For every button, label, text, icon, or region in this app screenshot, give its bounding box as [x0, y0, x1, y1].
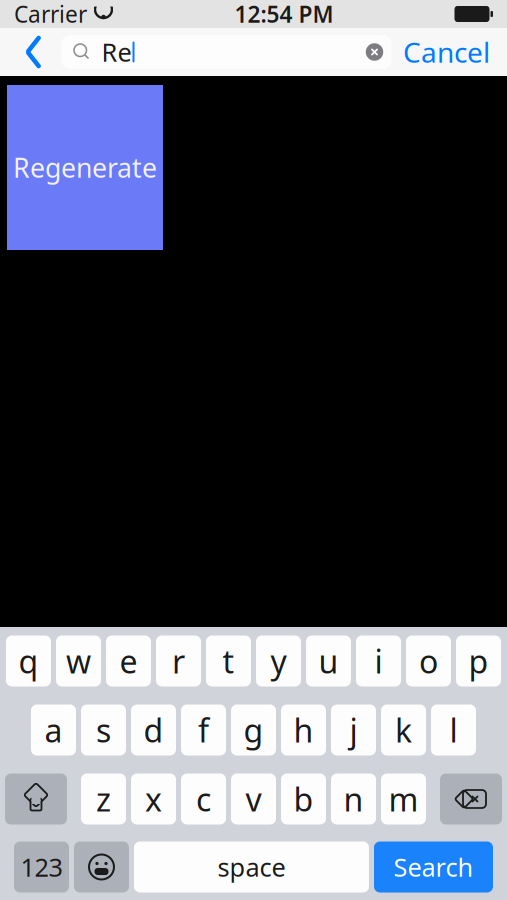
staticText: b [293, 778, 313, 820]
staticText: h [293, 709, 313, 751]
button[interactable]: Emoji [74, 841, 129, 892]
button[interactable]: l [431, 704, 476, 755]
staticText: r [172, 640, 185, 682]
button[interactable]: k [381, 704, 426, 755]
button[interactable]: f [181, 704, 226, 755]
staticText: u [318, 640, 338, 682]
staticText: Regenerate [13, 150, 157, 185]
staticText: n [343, 778, 363, 820]
button[interactable]: Search [374, 841, 493, 892]
staticText: m [388, 778, 418, 820]
staticText: l [449, 709, 457, 751]
button[interactable]: d [131, 704, 176, 755]
button[interactable]: Shift [5, 773, 67, 824]
button[interactable]: u [306, 635, 351, 686]
staticText: x [145, 778, 162, 820]
staticText: s [96, 709, 111, 751]
staticText: t [222, 640, 234, 682]
button[interactable]: w [56, 635, 101, 686]
staticText: g [243, 709, 263, 751]
button[interactable]: s [81, 704, 126, 755]
staticText: f [198, 709, 209, 751]
staticText: y [270, 640, 286, 682]
button[interactable]: c [181, 773, 226, 824]
button[interactable]: space [134, 841, 369, 892]
staticText: Re [101, 35, 131, 69]
staticText: d [143, 709, 163, 751]
staticText: a [44, 709, 62, 751]
button[interactable]: g [231, 704, 276, 755]
button[interactable]: a [31, 704, 76, 755]
button[interactable]: h [281, 704, 326, 755]
staticText: space [217, 850, 285, 884]
staticText: z [96, 778, 111, 820]
button[interactable]: Clear text [357, 35, 391, 69]
staticText: o [419, 640, 438, 682]
button[interactable]: r [156, 635, 201, 686]
staticText: v [245, 778, 261, 820]
button[interactable]: 123 [14, 841, 69, 892]
staticText: Cancel [403, 33, 490, 71]
button[interactable]: x [131, 773, 176, 824]
staticText: Carrier [14, 0, 87, 29]
button[interactable]: t [206, 635, 251, 686]
button[interactable]: b [281, 773, 326, 824]
button[interactable]: v [231, 773, 276, 824]
button[interactable]: Cancel [391, 28, 501, 76]
button[interactable]: e [106, 635, 151, 686]
staticText: j [349, 709, 357, 751]
button[interactable]: y [256, 635, 301, 686]
staticText: e [119, 640, 137, 682]
button[interactable]: j [331, 704, 376, 755]
button[interactable]: n [331, 773, 376, 824]
button[interactable]: Back [5, 28, 61, 76]
staticText: Search [393, 850, 473, 884]
button[interactable]: z [81, 773, 126, 824]
button[interactable]: m [381, 773, 426, 824]
button[interactable]: q [6, 635, 51, 686]
staticText: q [18, 640, 38, 682]
staticText: 123 [20, 850, 62, 884]
staticText: k [395, 709, 412, 751]
staticText: c [196, 778, 211, 820]
staticText: i [374, 640, 382, 682]
staticText: w [66, 640, 91, 682]
button[interactable]: i [356, 635, 401, 686]
staticText: 12:54 PM [234, 0, 333, 29]
button[interactable]: p [456, 635, 501, 686]
button[interactable]: o [406, 635, 451, 686]
button[interactable]: Delete [440, 773, 502, 824]
staticText: p [468, 640, 488, 682]
button[interactable]: Regenerate [7, 85, 163, 250]
